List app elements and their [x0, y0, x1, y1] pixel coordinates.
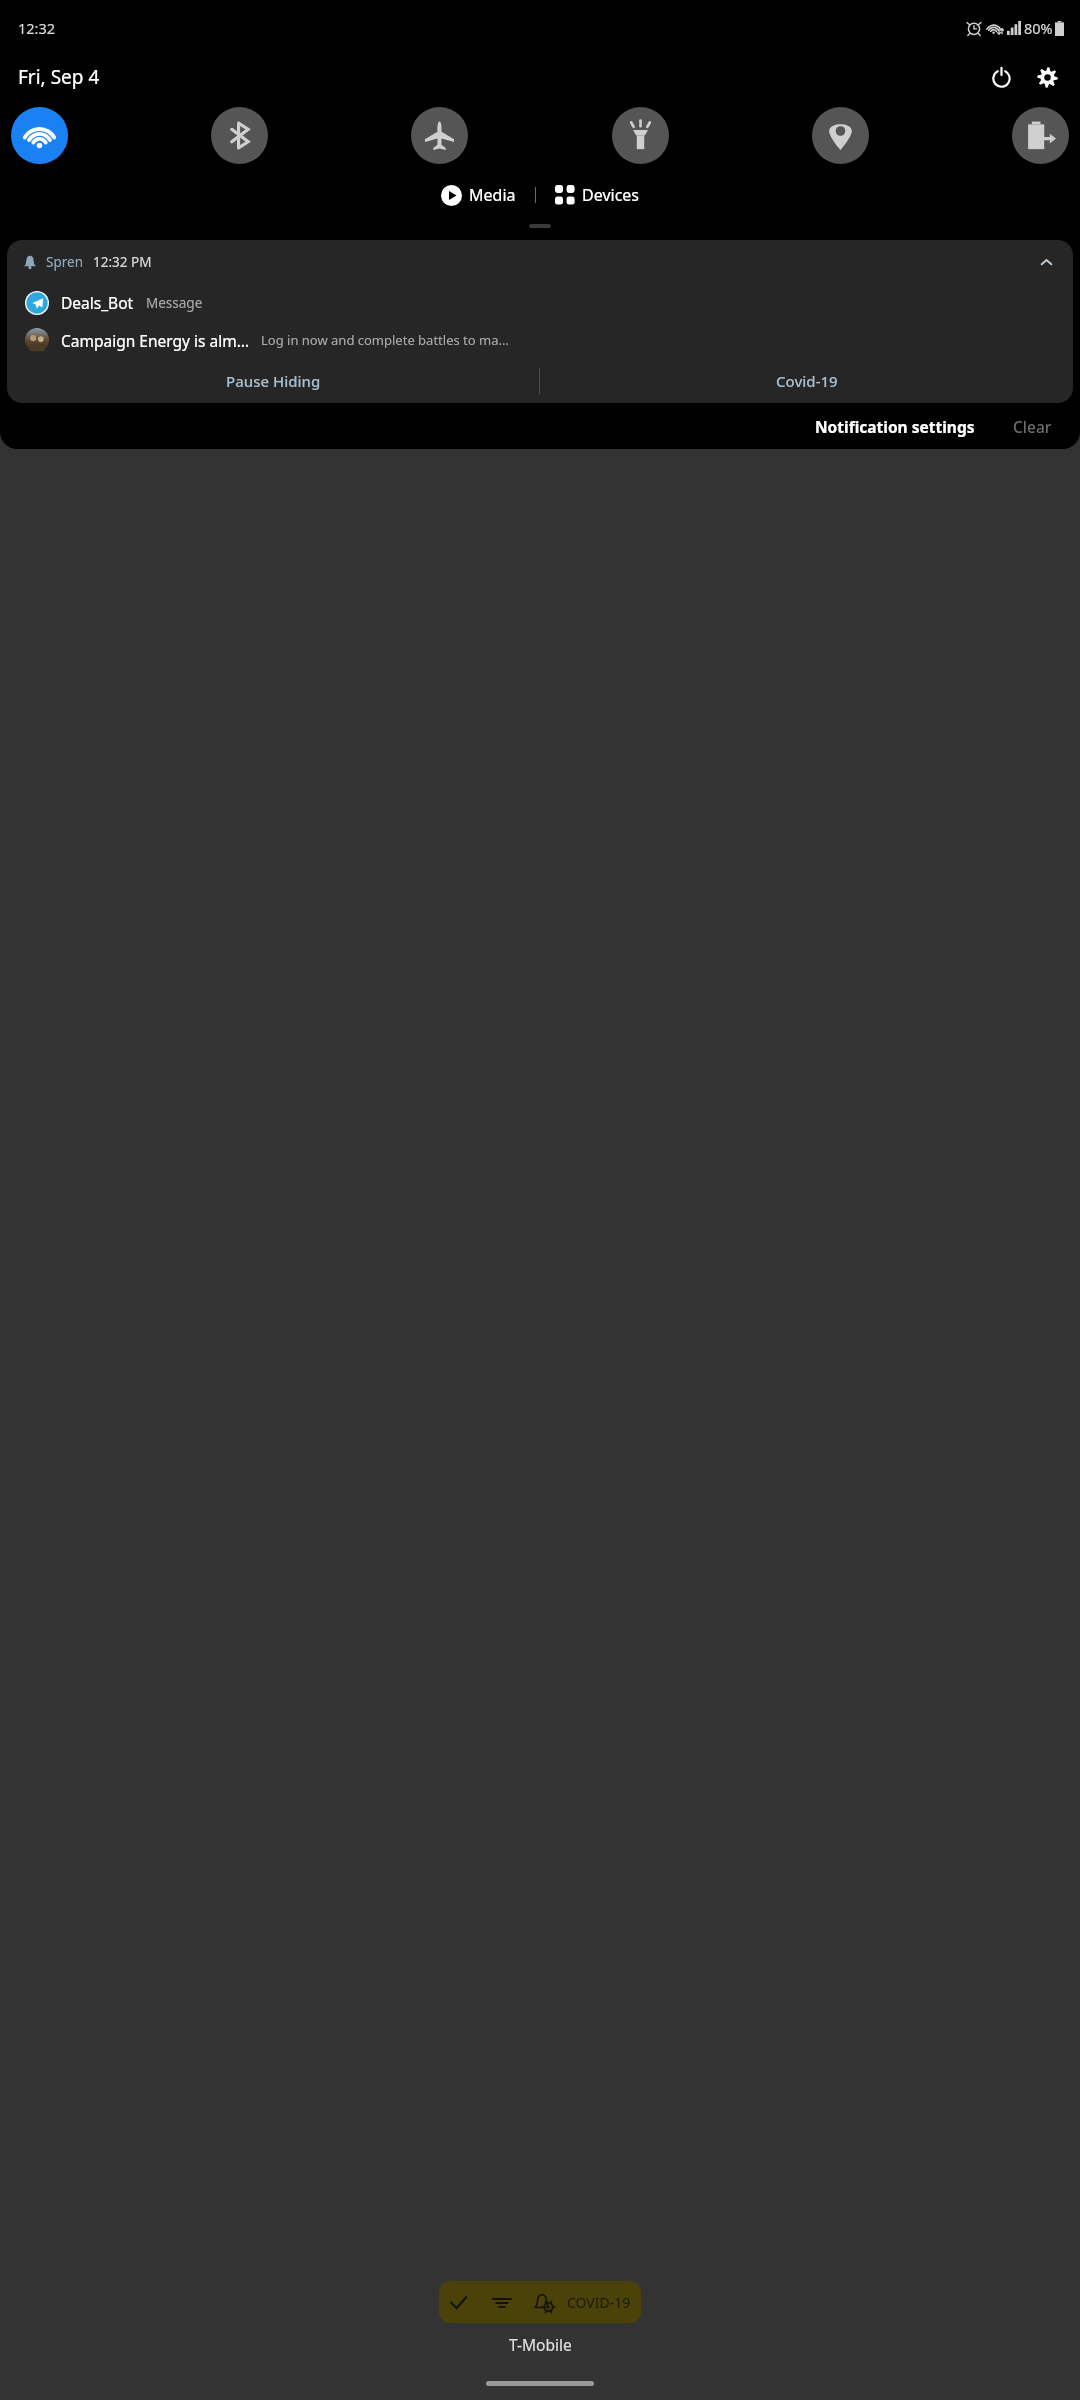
staticText: Fri, Sep 4 [18, 64, 100, 90]
staticText: 12:32 [18, 18, 56, 38]
button[interactable]: Spren [7, 240, 1073, 403]
staticText: Covid-19 [776, 371, 838, 391]
staticText: 12:32 PM [93, 253, 152, 271]
button[interactable]: Airplane mode [411, 107, 468, 164]
button[interactable]: Collapse [1031, 247, 1061, 277]
staticText: T-Mobile [509, 2334, 572, 2355]
button[interactable]: Notification settings [809, 410, 981, 443]
staticText: Clear [1013, 416, 1052, 437]
staticText: Notification settings [815, 416, 975, 437]
staticText: 80% [1024, 18, 1053, 38]
button[interactable]: Wi-Fi [11, 107, 68, 164]
button[interactable]: Location [812, 107, 869, 164]
staticText: Media [469, 184, 516, 206]
staticText: Campaign Energy is alm… [61, 330, 249, 351]
staticText: Spren [46, 253, 83, 271]
staticText: Devices [582, 184, 640, 206]
button[interactable]: Power [984, 60, 1018, 94]
staticText: Pause Hiding [226, 371, 321, 391]
button[interactable]: Wireless power share [1012, 107, 1069, 164]
button[interactable]: Devices [549, 180, 646, 210]
button[interactable]: Covid-19 [540, 359, 1073, 403]
staticText: COVID-19 [567, 2293, 631, 2312]
button[interactable]: Bluetooth [211, 107, 268, 164]
button[interactable]: Media [435, 180, 522, 210]
staticText: Deals_Bot [61, 292, 134, 313]
button[interactable]: Settings [1030, 60, 1064, 94]
button[interactable]: Clear [1007, 410, 1058, 443]
button[interactable]: Flashlight [612, 107, 669, 164]
button[interactable]: COVID-19 [439, 2281, 641, 2323]
staticText: Log in now and complete battles to ma… [261, 331, 509, 349]
button[interactable]: Pause Hiding [7, 359, 539, 403]
staticText: Message [146, 294, 203, 312]
